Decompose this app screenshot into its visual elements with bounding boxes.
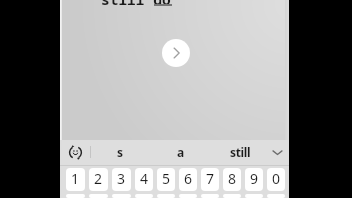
staticText: 2 [94, 169, 103, 188]
button[interactable]: 9 [245, 168, 263, 191]
button[interactable]: 8 [223, 168, 241, 191]
staticText: 5 [162, 169, 171, 188]
staticText: still [230, 144, 251, 160]
button[interactable]: 1 [66, 168, 85, 191]
button[interactable]: a [150, 140, 210, 165]
staticText: s [117, 144, 123, 160]
button[interactable]: 4 [135, 168, 153, 191]
button[interactable] [66, 194, 85, 198]
button[interactable]: 2 [89, 168, 108, 191]
button[interactable] [157, 194, 175, 198]
button[interactable]: 3 [112, 168, 131, 191]
button[interactable] [267, 194, 285, 198]
staticText: 0 [272, 169, 281, 188]
staticText: a [177, 144, 184, 160]
button[interactable]: s [90, 140, 150, 165]
button[interactable] [89, 194, 108, 198]
staticText: 1 [71, 169, 80, 188]
button[interactable]: 6 [179, 168, 197, 191]
staticText: still do [101, 0, 171, 9]
button[interactable] [245, 194, 263, 198]
button[interactable] [223, 194, 241, 198]
button[interactable] [179, 194, 197, 198]
button[interactable]: Expand suggestions [266, 140, 288, 165]
staticText: 6 [184, 169, 193, 188]
staticText: 4 [140, 169, 149, 188]
button[interactable]: 0 [267, 168, 285, 191]
button[interactable]: still [210, 140, 270, 165]
button[interactable]: 5 [157, 168, 175, 191]
button[interactable] [135, 194, 153, 198]
button[interactable] [201, 194, 219, 198]
staticText: 9 [250, 169, 259, 188]
staticText: 3 [117, 169, 126, 188]
button[interactable]: 7 [201, 168, 219, 191]
button[interactable]: Emoji keyboard [64, 140, 86, 165]
staticText: 8 [228, 169, 237, 188]
button[interactable] [112, 194, 131, 198]
staticText: 7 [206, 169, 215, 188]
button[interactable]: Next [162, 39, 190, 67]
